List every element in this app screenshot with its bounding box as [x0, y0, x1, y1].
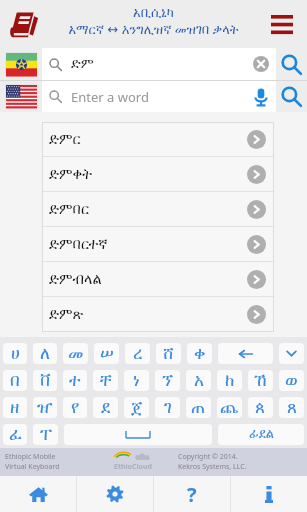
button[interactable]: Search Amharic: [276, 48, 307, 80]
button[interactable]: ሸ: [156, 343, 181, 364]
button[interactable]: ድምቀት: [42, 157, 274, 191]
button[interactable]: ዘ: [3, 397, 27, 418]
button[interactable]: Home: [0, 476, 76, 512]
staticText: Ethiopic Mobile: [5, 452, 56, 462]
button[interactable]: ድምር: [42, 122, 274, 156]
button[interactable]: ረ: [125, 343, 150, 364]
staticText: ዠ: [37, 399, 53, 416]
staticText: Enter a word: [71, 88, 149, 106]
button[interactable]: Dictionary: [4, 4, 44, 44]
button[interactable]: ወ: [279, 370, 304, 391]
staticText: ፈ: [9, 426, 22, 443]
staticText: ጸ: [287, 399, 297, 416]
staticText: ገ: [164, 399, 172, 416]
staticText: ድምብላል: [49, 272, 102, 287]
button[interactable]: ተ: [63, 370, 87, 391]
button[interactable]: Help: [154, 476, 230, 512]
staticText: ጨ: [220, 399, 239, 416]
button[interactable]: ዠ: [33, 397, 57, 418]
button[interactable]: ድምጽ: [42, 297, 274, 331]
button[interactable]: ጠ: [186, 397, 211, 418]
button[interactable]: English: [0, 81, 42, 112]
staticText: መ: [68, 345, 84, 362]
staticText: አ: [194, 372, 204, 389]
button[interactable]: ድም: [42, 48, 276, 80]
staticText: ድምቀት: [49, 167, 93, 182]
staticText: አማርኛ ↔ እንግሊዝኛ መዝገበ ቃላት: [68, 20, 239, 38]
staticText: አቢሲኒካ: [133, 7, 174, 20]
button[interactable]: ነ: [124, 370, 149, 391]
button[interactable]: Search English: [276, 81, 307, 112]
staticText: የ: [71, 399, 80, 416]
button[interactable]: ደ: [93, 397, 118, 418]
button[interactable]: Hide keyboard: [279, 343, 304, 364]
button[interactable]: Amharic: [0, 48, 42, 80]
button[interactable]: Menu: [262, 1, 302, 47]
button[interactable]: ጸ: [279, 397, 304, 418]
staticText: ሸ: [163, 345, 174, 362]
button[interactable]: መ: [63, 343, 88, 364]
button[interactable]: ጰ: [248, 397, 273, 418]
staticText: ፊደል: [249, 428, 274, 441]
button[interactable]: ቸ: [93, 370, 118, 391]
staticText: ?: [187, 481, 197, 508]
button[interactable]: About: [231, 476, 307, 512]
staticText: ድምበርተኛ: [49, 237, 108, 252]
staticText: ጠ: [191, 399, 206, 416]
button[interactable]: Enter a word: [42, 81, 276, 112]
staticText: Copyright © 2014.: [178, 452, 238, 462]
staticText: ለ: [40, 345, 50, 362]
button[interactable]: ፐ: [33, 424, 58, 445]
button[interactable]: ከ: [217, 370, 242, 391]
staticText: ኘ: [162, 372, 174, 389]
button[interactable]: Backspace: [218, 343, 273, 364]
staticText: ድምር: [49, 132, 81, 147]
staticText: ከ: [225, 372, 235, 389]
staticText: ወ: [285, 372, 298, 389]
staticText: ጰ: [255, 399, 266, 416]
staticText: ሠ: [100, 345, 114, 362]
button[interactable]: ሠ: [94, 343, 119, 364]
staticText: ረ: [133, 345, 143, 362]
staticText: ነ: [133, 372, 140, 389]
button[interactable]: ኸ: [248, 370, 273, 391]
staticText: ድምበር: [49, 202, 89, 217]
button[interactable]: Settings: [77, 476, 153, 512]
button[interactable]: ጨ: [217, 397, 242, 418]
staticText: ኸ: [254, 372, 267, 389]
button[interactable]: የ: [63, 397, 87, 418]
button[interactable]: ቀ: [187, 343, 212, 364]
staticText: ድምጽ: [49, 307, 84, 322]
button[interactable]: ቨ: [33, 370, 57, 391]
staticText: በ: [10, 372, 20, 389]
staticText: ዘ: [10, 399, 20, 416]
staticText: Kekros Systems, LLC.: [178, 462, 247, 472]
button[interactable]: ድምበር: [42, 192, 274, 226]
staticText: EthioCloud: [114, 462, 152, 472]
button[interactable]: ገ: [155, 397, 180, 418]
button[interactable]: Clear: [246, 49, 276, 79]
button[interactable]: አ: [186, 370, 211, 391]
staticText: ቸ: [100, 372, 112, 389]
staticText: Virtual Keyboard: [5, 462, 60, 472]
staticText: ድም: [71, 57, 94, 71]
button[interactable]: ኘ: [155, 370, 180, 391]
button[interactable]: በ: [3, 370, 27, 391]
staticText: ደ: [101, 399, 111, 416]
button[interactable]: ጀ: [124, 397, 149, 418]
button[interactable]: Space: [64, 424, 212, 445]
button[interactable]: ፈ: [3, 424, 27, 445]
staticText: ተ: [69, 372, 81, 389]
staticText: ቨ: [40, 372, 51, 389]
button[interactable]: ድምብላል: [42, 262, 274, 296]
staticText: ቀ: [194, 345, 206, 362]
button[interactable]: Voice search: [246, 82, 276, 112]
button[interactable]: ሀ: [3, 343, 27, 364]
button[interactable]: ፊደል: [218, 424, 304, 445]
staticText: ሀ: [11, 345, 20, 362]
button[interactable]: ለ: [33, 343, 57, 364]
staticText: ጀ: [131, 399, 143, 416]
button[interactable]: ድምበርተኛ: [42, 227, 274, 261]
staticText: ፐ: [40, 426, 52, 443]
